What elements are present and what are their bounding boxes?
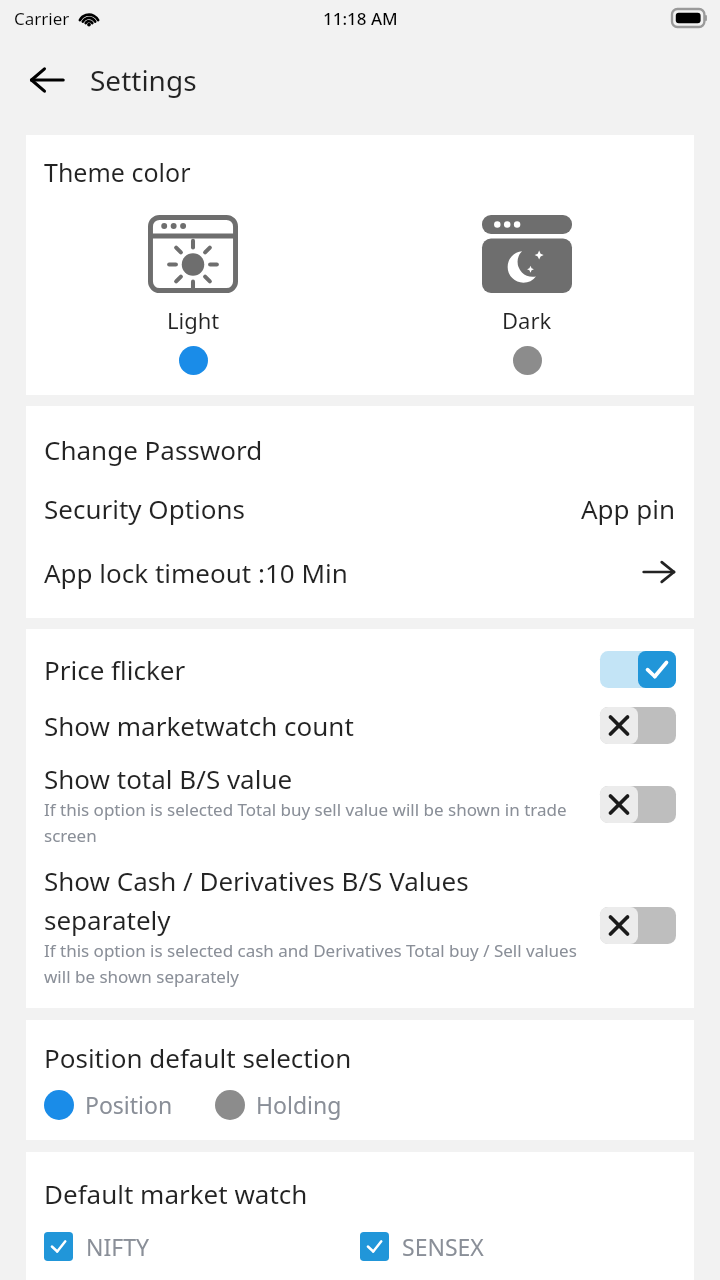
staticText: Show marketwatch count: [44, 708, 354, 743]
staticText: Position default selection: [44, 1040, 352, 1075]
button[interactable]: Show total B/S value: [44, 753, 676, 855]
staticText: Security Options: [44, 491, 245, 526]
staticText: If this option is selected Total buy sel…: [44, 798, 588, 847]
staticText: Carrier: [14, 7, 70, 30]
staticText: SENSEX: [402, 1231, 484, 1262]
button[interactable]: Disabled toggle: [600, 707, 676, 744]
staticText: Show total B/S value: [44, 761, 293, 796]
staticText: Dark: [502, 305, 552, 335]
button[interactable]: Price flicker: [44, 641, 676, 697]
button[interactable]: Enabled toggle: [600, 651, 676, 688]
button[interactable]: Change Password: [44, 422, 676, 476]
staticText: 11:18 AM: [323, 7, 398, 30]
staticText: If this option is selected cash and Deri…: [44, 939, 588, 988]
staticText: Change Password: [44, 432, 263, 467]
button[interactable]: Show marketwatch count: [44, 697, 676, 753]
staticText: Show Cash / Derivatives B/S Values separ…: [44, 863, 588, 937]
button[interactable]: Disabled toggle: [600, 786, 676, 823]
button[interactable]: Disabled toggle: [600, 907, 676, 944]
button[interactable]: Security Options: [44, 476, 676, 540]
staticText: App pin: [581, 491, 676, 526]
staticText: Holding: [256, 1089, 342, 1120]
button[interactable]: Position: [44, 1089, 173, 1120]
button[interactable]: Dark theme: [360, 215, 694, 375]
staticText: Settings: [90, 61, 197, 99]
button[interactable]: Back: [18, 51, 76, 109]
staticText: NIFTY: [86, 1231, 150, 1262]
button[interactable]: App lock timeout :10 Min: [44, 540, 676, 604]
other: Open app lock timeout: [642, 555, 676, 589]
staticText: Position: [85, 1089, 173, 1120]
staticText: Default market watch: [44, 1176, 308, 1211]
button[interactable]: Show Cash / Derivatives B/S Values separ…: [44, 855, 676, 996]
button[interactable]: Holding: [215, 1089, 342, 1120]
staticText: App lock timeout :10 Min: [44, 555, 348, 590]
button[interactable]: NIFTY: [44, 1231, 360, 1262]
staticText: Light: [167, 305, 220, 335]
button[interactable]: Light theme: [26, 215, 360, 375]
staticText: Theme color: [44, 155, 191, 189]
staticText: Price flicker: [44, 652, 186, 687]
button[interactable]: SENSEX: [360, 1231, 676, 1262]
